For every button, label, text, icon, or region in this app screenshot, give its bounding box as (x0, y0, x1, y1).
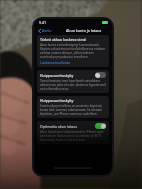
button[interactable]: Tärkeä akkua koskeva viesti (37, 35, 109, 67)
staticText: 9.41 (39, 20, 47, 25)
staticText: Asetu (42, 28, 52, 33)
staticText: Optimoitu akun lataus (40, 124, 78, 129)
staticText: Akun kunto ja lataus (66, 28, 102, 33)
button[interactable]: Huippusuorituskyky (37, 96, 109, 118)
button[interactable]: Optimoitu akun lataus (37, 121, 109, 144)
button[interactable]: Back to Asetukset (37, 26, 53, 35)
staticText: Lisätietoa huolloista (40, 61, 71, 65)
staticText: Akun kulumisen vähentämiseksi iPhone opp… (40, 130, 106, 142)
button[interactable]: Switch off (95, 72, 106, 78)
button[interactable]: Switch on (95, 123, 106, 129)
button[interactable]: Huippusuorituskyky (37, 70, 109, 93)
staticText: Huippusuorituskyky (40, 73, 74, 78)
staticText: Tama ilmaisten imni hperfomth variahkara… (40, 79, 106, 91)
staticText: Huippusuorituskyky (40, 98, 74, 103)
staticText: Suorituskyvyn hallinta on poistettu käyt… (40, 104, 106, 116)
staticText: Akun kunto on heikentynyt huomattavasti.… (40, 43, 106, 59)
staticText: Tärkeä akkua koskeva viesti (40, 37, 87, 42)
